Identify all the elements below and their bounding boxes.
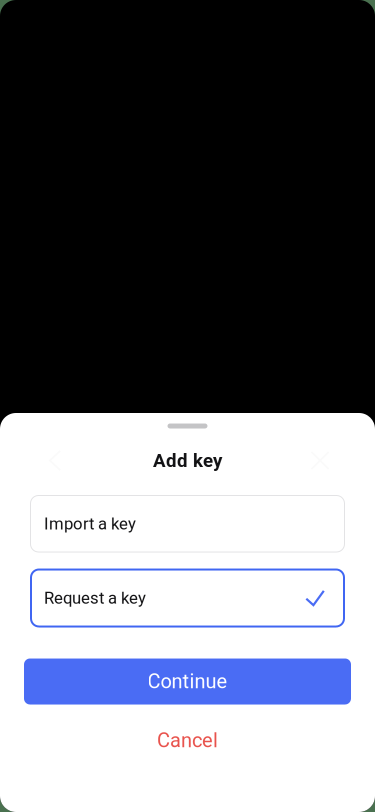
button[interactable]: Continue xyxy=(24,658,351,704)
staticText: Cancel xyxy=(157,729,218,752)
button[interactable]: Request a key xyxy=(30,568,345,627)
button[interactable]: Import a key xyxy=(30,495,345,552)
staticText: Add key xyxy=(153,450,222,471)
button[interactable]: Cancel xyxy=(0,725,375,755)
staticText: Import a key xyxy=(44,514,136,533)
staticText: Continue xyxy=(147,670,227,693)
staticText: Request a key xyxy=(44,588,146,608)
